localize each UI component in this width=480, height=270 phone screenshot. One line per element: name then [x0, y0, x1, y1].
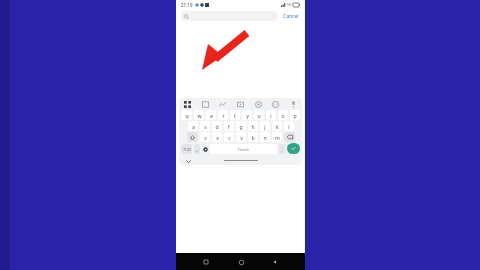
button[interactable]: n [260, 132, 270, 142]
staticText: o [281, 112, 285, 119]
button[interactable]: Keyboard tool 2 [217, 99, 228, 110]
staticText: 5G [287, 2, 292, 7]
staticText: d [215, 123, 219, 130]
button[interactable]: Hide keyboard [185, 158, 191, 164]
staticText: l [288, 123, 290, 130]
button[interactable]: , [194, 144, 200, 154]
staticText: ?123 [183, 147, 191, 152]
button[interactable]: Settings [202, 144, 208, 154]
button[interactable]: Send [287, 143, 300, 154]
button[interactable]: h [248, 121, 258, 131]
button[interactable]: i [266, 110, 276, 120]
staticText: n [263, 134, 267, 141]
staticText: p [293, 112, 297, 119]
button[interactable]: Recents [201, 257, 211, 267]
button[interactable]: Home [236, 257, 246, 267]
button[interactable]: o [278, 110, 288, 120]
staticText: e [210, 112, 213, 119]
button[interactable]: w [194, 110, 204, 120]
button[interactable]: Keyboard tool 5 [270, 99, 281, 110]
button[interactable]: Keyboard tool 4 [253, 99, 264, 110]
button[interactable]: m [272, 132, 282, 142]
staticText: z [204, 134, 207, 141]
button[interactable]: r [218, 110, 228, 120]
staticText: c [228, 134, 231, 141]
staticText: a [192, 123, 195, 130]
button[interactable]: x [212, 132, 222, 142]
staticText: g [239, 123, 243, 130]
staticText: y [246, 112, 249, 119]
button[interactable]: Keyboard tool 1 [200, 99, 211, 110]
staticText: . [281, 146, 283, 153]
staticText: t [234, 112, 236, 119]
button[interactable]: g [236, 121, 246, 131]
staticText: f [228, 123, 230, 130]
button[interactable]: u [254, 110, 264, 120]
button[interactable]: a [188, 121, 198, 131]
button[interactable]: ?123 [181, 144, 192, 154]
button[interactable]: t [230, 110, 240, 120]
button[interactable]: d [212, 121, 222, 131]
staticText: i [270, 112, 272, 119]
staticText: w [197, 112, 202, 119]
staticText: v [240, 134, 243, 141]
staticText: m [275, 134, 280, 141]
button[interactable]: c [224, 132, 234, 142]
staticText: French [238, 147, 249, 152]
button[interactable] [181, 11, 278, 21]
button[interactable]: v [236, 132, 246, 142]
button[interactable]: k [272, 121, 282, 131]
staticText: j [264, 123, 266, 130]
button[interactable]: Back [270, 257, 280, 267]
button[interactable]: q [182, 110, 192, 120]
button[interactable]: z [200, 132, 210, 142]
staticText: r [222, 112, 225, 119]
button[interactable]: j [260, 121, 270, 131]
staticText: h [251, 123, 255, 130]
button[interactable]: Backspace [284, 132, 295, 142]
button[interactable]: p [290, 110, 300, 120]
button[interactable]: Shift [187, 132, 198, 142]
button[interactable]: b [248, 132, 258, 142]
button[interactable]: Keyboard tool 6 [288, 99, 299, 110]
button[interactable]: f [224, 121, 234, 131]
staticText: x [216, 134, 219, 141]
staticText: k [276, 123, 279, 130]
button[interactable]: e [206, 110, 216, 120]
button[interactable]: Space [210, 144, 277, 154]
button[interactable]: Keyboard tool 3 [235, 99, 246, 110]
button[interactable]: Cancel [282, 11, 300, 22]
button[interactable]: . [279, 144, 285, 154]
staticText: b [251, 134, 255, 141]
button[interactable]: s [200, 121, 210, 131]
staticText: Cancel [283, 13, 299, 20]
staticText: s [204, 123, 207, 130]
button[interactable]: y [242, 110, 252, 120]
staticText: q [185, 112, 189, 119]
staticText: 21:19 [181, 2, 193, 8]
staticText: u [257, 112, 261, 119]
button[interactable]: l [284, 121, 294, 131]
staticText: , [196, 146, 198, 153]
button[interactable]: Keyboard tool 0 [182, 99, 193, 110]
